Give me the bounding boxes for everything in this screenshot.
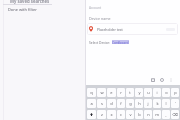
staticText: q xyxy=(90,90,93,95)
staticText: z xyxy=(101,112,103,117)
staticText: x xyxy=(110,112,113,117)
button[interactable]: Key z xyxy=(97,110,106,119)
button[interactable]: Key f xyxy=(117,99,125,108)
staticText: j xyxy=(147,101,149,106)
staticText: d xyxy=(110,101,113,106)
staticText: v xyxy=(129,112,132,117)
button[interactable]: Clipboard xyxy=(150,77,155,82)
button[interactable]: Key q xyxy=(87,88,96,97)
button[interactable]: Key g xyxy=(126,99,134,108)
button[interactable]: Location marker xyxy=(87,23,178,35)
button[interactable]: Key , xyxy=(162,110,170,119)
staticText: y xyxy=(138,90,141,95)
button[interactable]: Stickers xyxy=(159,77,164,82)
staticText: a xyxy=(90,101,93,106)
button[interactable]: Key y xyxy=(135,88,143,97)
staticText: , xyxy=(165,112,167,117)
button[interactable]: Key x xyxy=(107,110,116,119)
staticText: g xyxy=(129,101,132,106)
button[interactable]: Key e xyxy=(107,88,116,97)
button[interactable]: Key u xyxy=(144,88,152,97)
staticText: r xyxy=(120,90,122,95)
button[interactable]: Key ' xyxy=(171,99,179,108)
staticText: m xyxy=(155,112,159,117)
staticText: u xyxy=(147,90,150,95)
button[interactable]: Key n xyxy=(144,110,152,119)
button[interactable]: Key w xyxy=(97,88,106,97)
staticText: b xyxy=(138,112,141,117)
staticText: c xyxy=(120,112,122,117)
other: Location marker xyxy=(88,26,94,32)
button[interactable]: Key d xyxy=(107,99,116,108)
button[interactable]: Done with filter xyxy=(0,7,85,12)
button[interactable]: Key ⌫ xyxy=(171,110,179,119)
staticText: t xyxy=(129,90,131,95)
button[interactable]: Key p xyxy=(171,88,179,97)
button[interactable]: Key k xyxy=(153,99,161,108)
staticText: e xyxy=(110,90,113,95)
staticText: f xyxy=(120,101,122,106)
staticText: s xyxy=(101,101,103,106)
button[interactable]: Key ⇧ xyxy=(87,110,96,119)
button[interactable]: Key o xyxy=(162,88,170,97)
button[interactable]: Key m xyxy=(153,110,161,119)
staticText: n xyxy=(147,112,150,117)
button[interactable]: Key j xyxy=(144,99,152,108)
button[interactable]: Key a xyxy=(87,99,96,108)
button[interactable]: Key r xyxy=(117,88,125,97)
staticText: Device name xyxy=(89,16,111,21)
button[interactable]: Key i xyxy=(153,88,161,97)
staticText: h xyxy=(138,101,141,106)
staticText: Select Device: xyxy=(89,40,111,44)
button[interactable]: Settings xyxy=(168,77,173,82)
button[interactable]: Key t xyxy=(126,88,134,97)
staticText: ' xyxy=(175,101,176,106)
staticText: Cardboard xyxy=(112,40,129,44)
staticText: Account xyxy=(89,6,102,10)
staticText: w xyxy=(100,90,104,95)
button[interactable]: Key h xyxy=(135,99,143,108)
staticText: Done with filter xyxy=(8,7,37,12)
staticText: i xyxy=(156,90,158,95)
button[interactable]: Key l xyxy=(162,99,170,108)
button[interactable]: Key s xyxy=(97,99,106,108)
button[interactable]: Select Device: xyxy=(89,40,129,44)
staticText: k xyxy=(156,101,159,106)
staticText: My saved searches xyxy=(10,0,50,4)
button[interactable]: Key b xyxy=(135,110,143,119)
staticText: ⌫ xyxy=(172,112,178,117)
staticText: l xyxy=(165,101,167,106)
button[interactable]: Key v xyxy=(126,110,134,119)
staticText: o xyxy=(165,90,168,95)
staticText: Placeholder text xyxy=(97,27,123,32)
button[interactable]: Key c xyxy=(117,110,125,119)
staticText: p xyxy=(174,90,177,95)
